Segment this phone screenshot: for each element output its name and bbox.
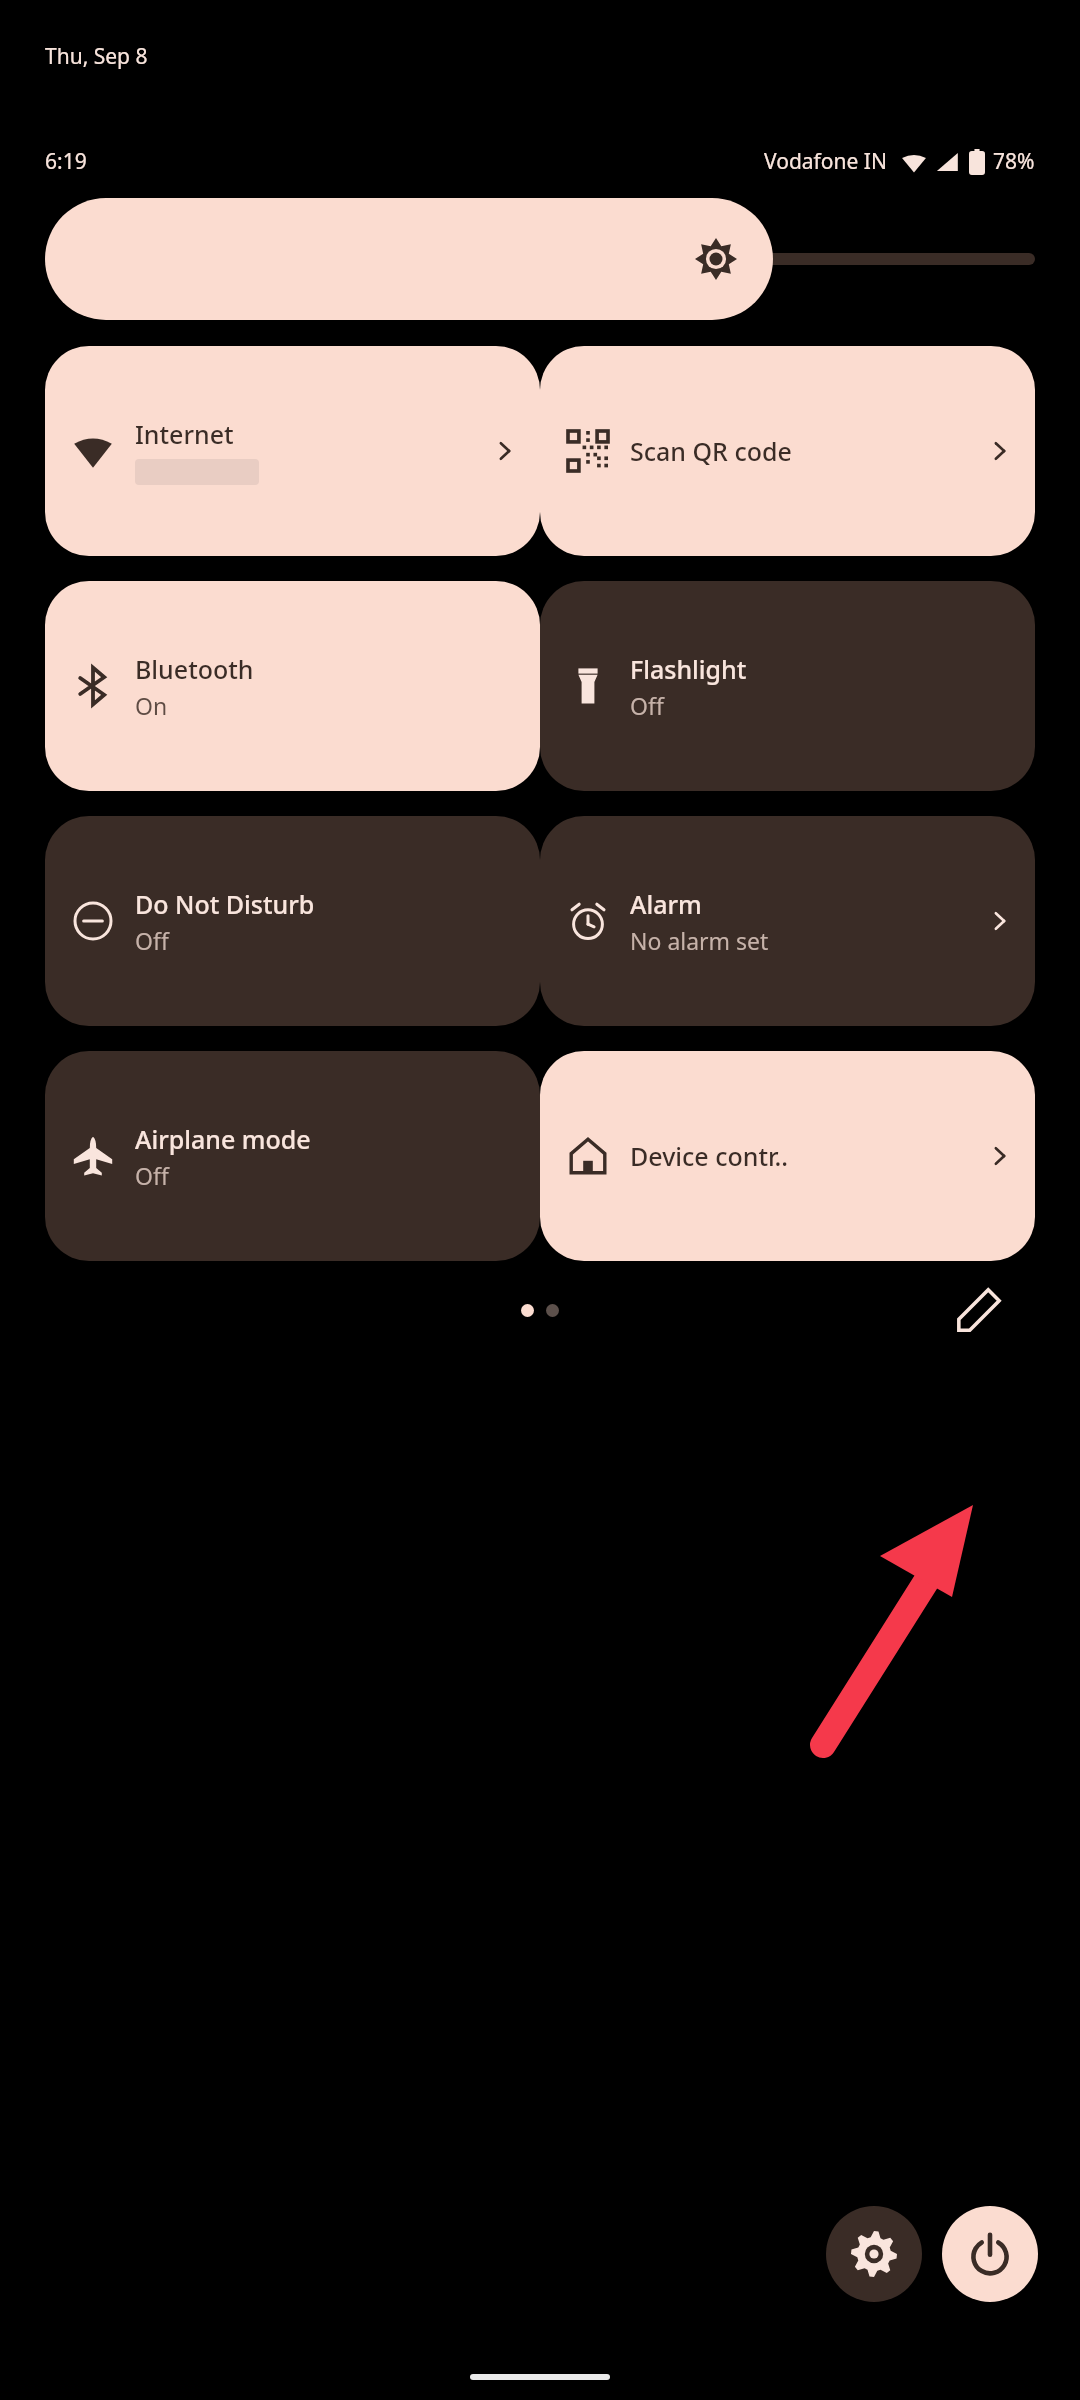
staticText: Off (135, 1160, 169, 1191)
staticText: Scan QR code (630, 434, 792, 468)
button[interactable]: Edit tiles (950, 1281, 1008, 1339)
button[interactable]: Device contr.. (540, 1051, 1035, 1261)
button[interactable]: Power (942, 2206, 1038, 2302)
staticText: Off (630, 690, 664, 721)
button[interactable]: Brightness (45, 198, 773, 320)
staticText: On (135, 690, 168, 721)
button[interactable]: Airplane mode (45, 1051, 540, 1261)
staticText: No alarm set (630, 925, 769, 956)
staticText: 6:19 (45, 147, 87, 176)
button[interactable]: Scan QR code (540, 346, 1035, 556)
staticText: 78% (993, 147, 1035, 176)
staticText: Airplane mode (135, 1122, 311, 1156)
button[interactable]: Flashlight (540, 581, 1035, 791)
staticText: Internet (135, 417, 234, 451)
button[interactable]: Bluetooth (45, 581, 540, 791)
button[interactable]: Settings (826, 2206, 922, 2302)
staticText: Do Not Disturb (135, 887, 315, 921)
staticText: Vodafone IN (764, 147, 887, 176)
staticText: Flashlight (630, 652, 747, 686)
staticText: Bluetooth (135, 652, 254, 686)
staticText: Device contr.. (630, 1139, 789, 1173)
staticText: Thu, Sep 8 (45, 42, 148, 71)
button[interactable]: Internet (45, 346, 540, 556)
staticText: Alarm (630, 887, 702, 921)
button[interactable]: Alarm (540, 816, 1035, 1026)
button[interactable]: Do Not Disturb (45, 816, 540, 1026)
staticText: Off (135, 925, 169, 956)
